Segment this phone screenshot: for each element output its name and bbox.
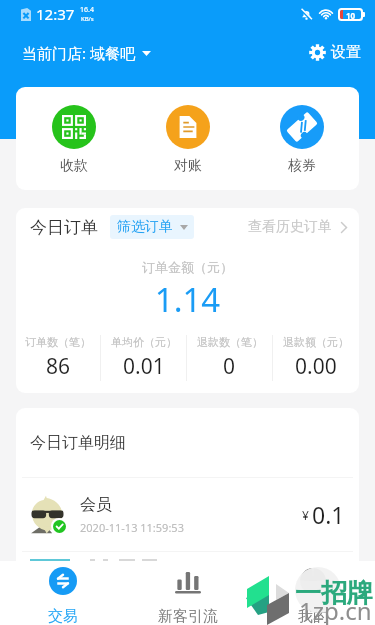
staticText: 当前门店: 域餐吧 bbox=[22, 43, 135, 63]
button[interactable]: 收款 bbox=[16, 87, 131, 190]
staticText: 今日订单 bbox=[30, 217, 98, 238]
staticText: 筛选订单 bbox=[117, 218, 173, 236]
staticText: 查看历史订单 bbox=[248, 218, 332, 236]
staticText: ¥ bbox=[302, 507, 309, 523]
staticText: 核券 bbox=[288, 157, 316, 175]
staticText: 收款 bbox=[60, 157, 88, 175]
staticText: 订单金额（元） bbox=[16, 259, 359, 275]
staticText: 0 bbox=[223, 352, 236, 381]
staticText: 交易 bbox=[48, 607, 78, 625]
button[interactable]: 核券 bbox=[245, 87, 359, 190]
staticText: 退款数（笔） bbox=[197, 335, 263, 349]
button[interactable]: 我的 bbox=[250, 561, 375, 625]
staticText: 今日订单明细 bbox=[30, 433, 126, 453]
staticText: 1zp.cn bbox=[299, 594, 372, 625]
button[interactable]: 会员 bbox=[16, 478, 359, 551]
button[interactable]: 当前门店: 域餐吧 bbox=[0, 37, 159, 69]
button[interactable]: 对账 bbox=[131, 87, 245, 190]
staticText: 设置 bbox=[331, 43, 361, 62]
staticText: 86 bbox=[46, 352, 71, 381]
staticText: 1.14 bbox=[16, 277, 359, 322]
button[interactable]: 筛选订单 bbox=[110, 215, 194, 239]
staticText: 一招牌 bbox=[295, 577, 373, 610]
staticText: 订单数（笔） bbox=[25, 335, 91, 349]
button[interactable]: 设置 bbox=[299, 37, 375, 68]
button[interactable]: 交易 bbox=[0, 561, 125, 625]
button[interactable]: 新客引流 bbox=[125, 561, 250, 625]
staticText: 对账 bbox=[174, 157, 202, 175]
staticText: 单均价（元） bbox=[111, 335, 177, 349]
staticText: 我的 bbox=[298, 607, 328, 625]
button[interactable]: 查看历史订单 bbox=[246, 212, 349, 242]
staticText: 退款额（元） bbox=[283, 335, 349, 349]
staticText: KB/s bbox=[81, 15, 94, 23]
staticText: 0.00 bbox=[295, 352, 337, 381]
staticText: 会员 bbox=[80, 495, 112, 515]
staticText: 0.01 bbox=[123, 352, 165, 381]
staticText: 12:37 bbox=[36, 4, 75, 24]
staticText: 新客引流 bbox=[158, 607, 218, 625]
staticText: 10 bbox=[346, 10, 356, 19]
staticText: 16.4 bbox=[80, 5, 94, 15]
staticText: 2020-11-13 11:59:53 bbox=[80, 520, 184, 535]
staticText: 0.1 bbox=[312, 499, 345, 530]
